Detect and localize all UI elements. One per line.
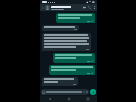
button[interactable]: Video call [82,5,87,10]
button[interactable] [49,65,95,75]
button[interactable] [42,33,91,51]
button[interactable] [51,6,82,10]
button[interactable]: Back [40,96,59,102]
button[interactable]: Home [59,96,78,102]
other: Attach [83,91,85,93]
button[interactable]: Profile photo [45,5,50,10]
button[interactable] [53,53,95,63]
button[interactable] [42,25,79,31]
button[interactable]: More options [92,6,96,10]
button[interactable]: Voice call [87,5,92,10]
other: Emoji [42,91,45,94]
button[interactable]: Emoji [41,89,89,95]
button[interactable]: Voice message [90,89,96,95]
button[interactable]: Back [41,6,45,10]
button[interactable] [56,13,95,23]
button[interactable] [42,77,78,86]
button[interactable]: Recent apps [78,96,97,102]
